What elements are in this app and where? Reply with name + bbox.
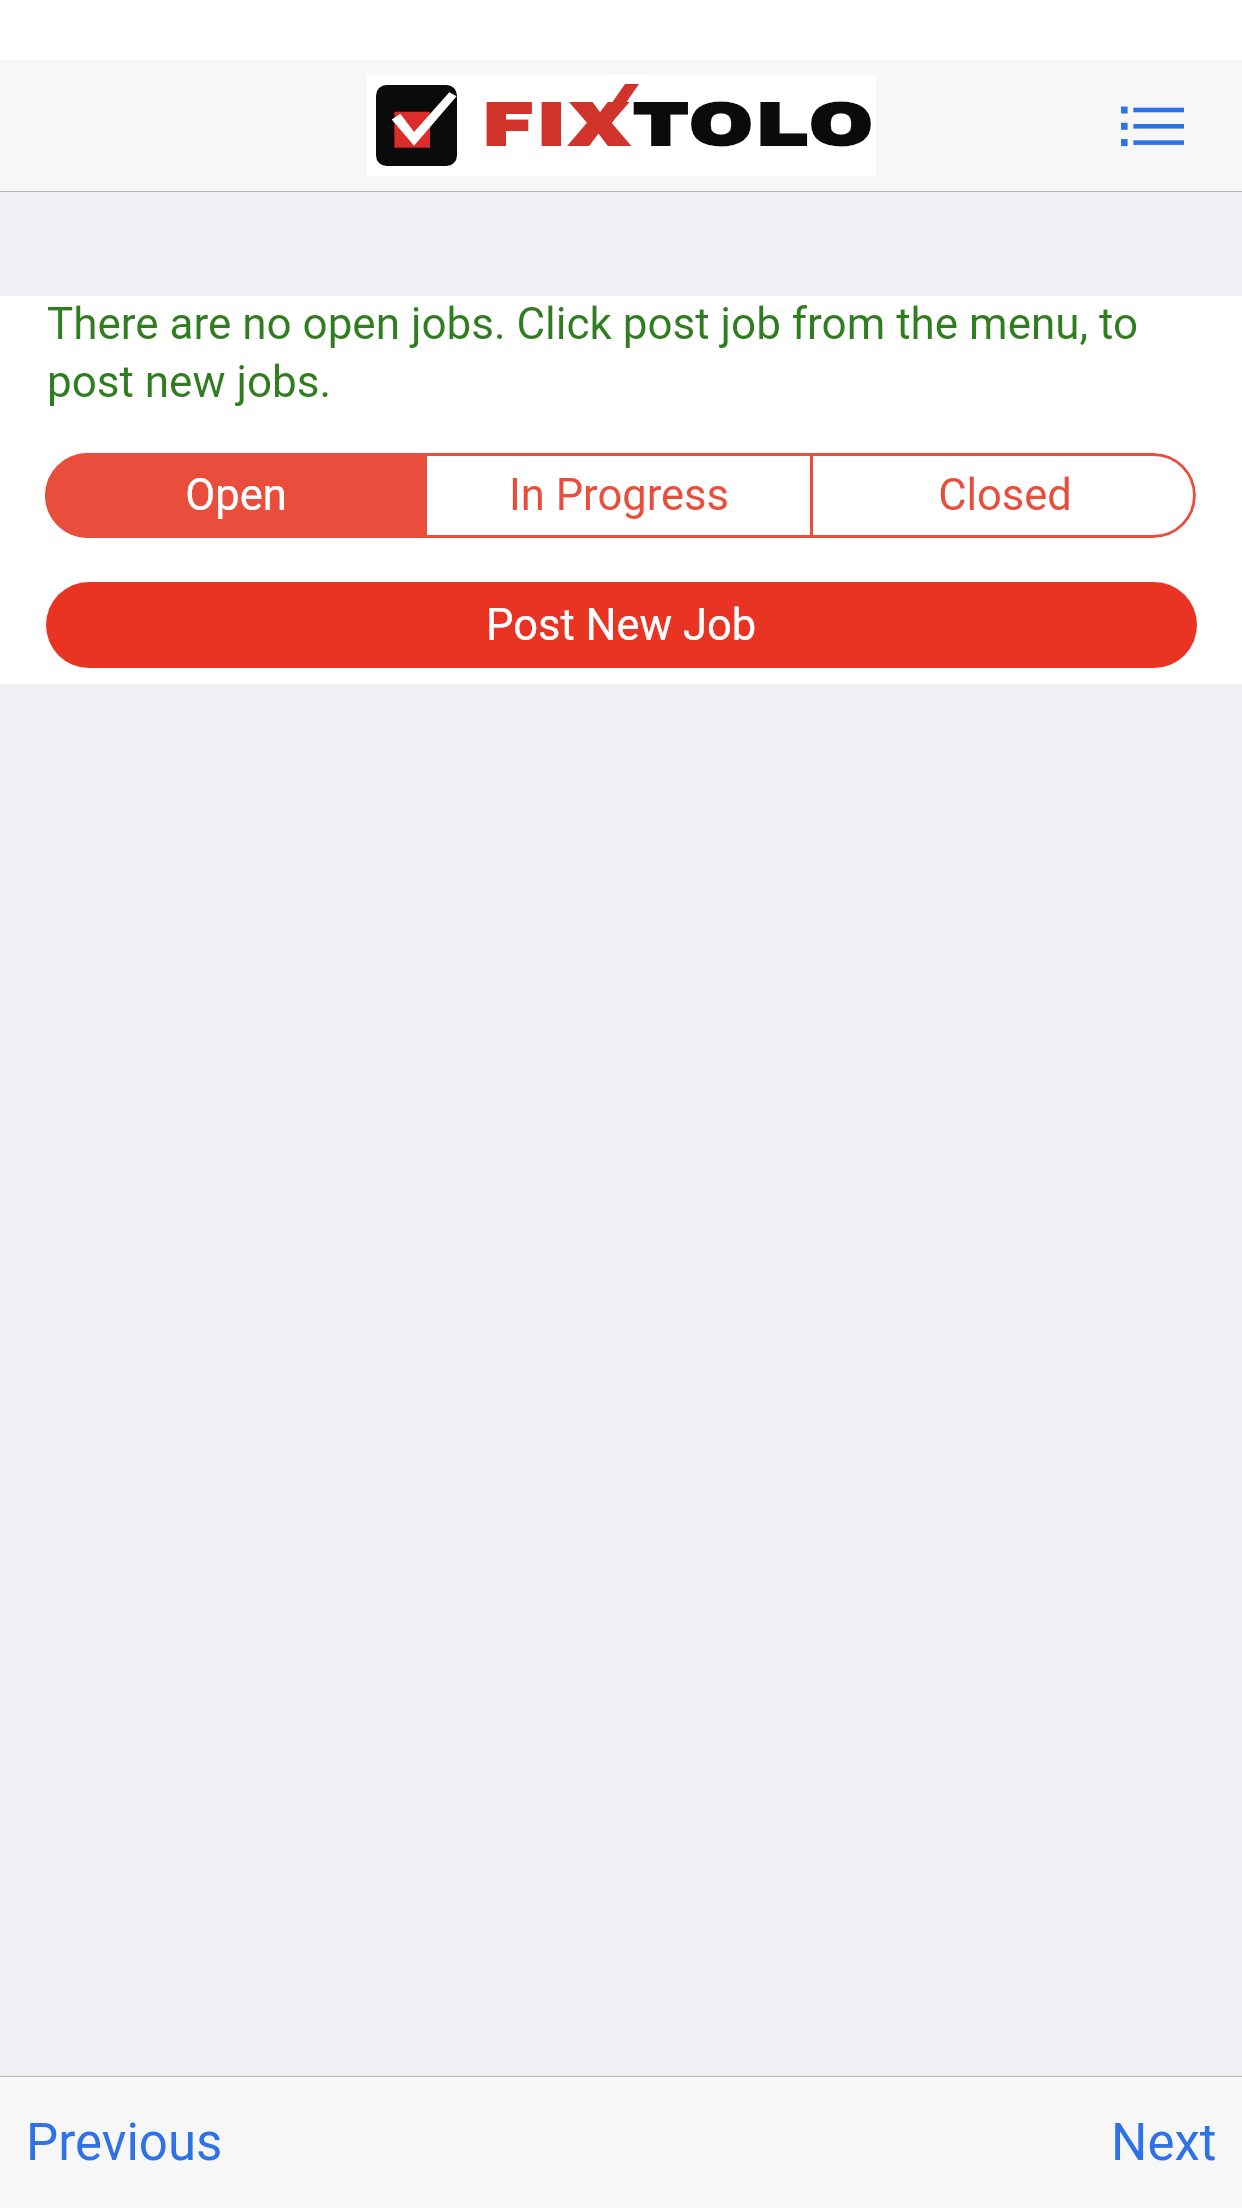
button[interactable]: Closed <box>813 453 1196 538</box>
staticText: Next <box>1111 2113 1217 2173</box>
staticText: Previous <box>26 2113 223 2173</box>
staticText: Open <box>185 470 287 521</box>
staticText: FIX <box>482 92 633 157</box>
button[interactable]: FIXTOLO home <box>367 75 876 176</box>
button[interactable]: Menu <box>1105 80 1200 175</box>
staticText: TOLO <box>633 92 877 157</box>
button[interactable]: Post New Job <box>46 582 1197 668</box>
staticText: In Progress <box>509 470 729 521</box>
staticText: There are no open jobs. Click post job f… <box>47 298 1139 408</box>
button[interactable]: Open <box>45 453 427 538</box>
button[interactable]: Next <box>1085 2091 1242 2195</box>
button[interactable]: Previous <box>0 2091 249 2195</box>
staticText: Post New Job <box>486 600 757 651</box>
staticText: Closed <box>938 470 1072 521</box>
button[interactable]: In Progress <box>427 453 810 538</box>
